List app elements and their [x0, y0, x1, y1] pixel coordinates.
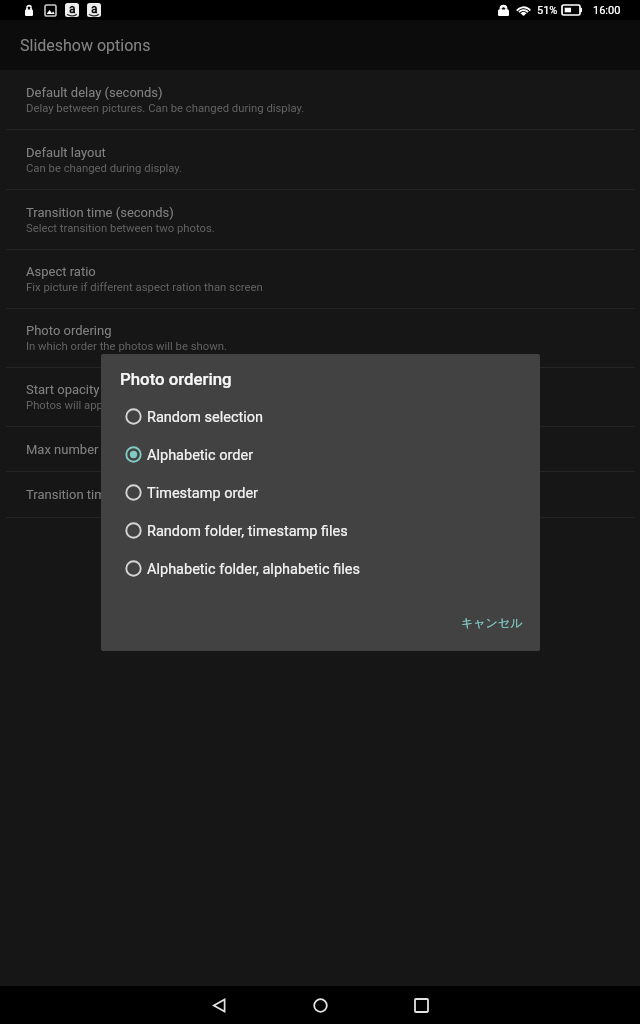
button[interactable]: Photo ordering: [0, 309, 640, 367]
button[interactable]: Aspect ratio: [0, 250, 640, 308]
staticText: Transition time (seconds): [26, 487, 174, 502]
button[interactable]: Back: [169, 986, 270, 1024]
staticText: Alphabetic folder, alphabetic files: [147, 561, 360, 578]
button[interactable]: Alphabetic order: [101, 436, 540, 474]
button[interactable]: Transition time (seconds): [0, 472, 640, 517]
button[interactable]: Recent apps: [371, 986, 472, 1024]
button[interactable]: Home: [270, 986, 371, 1024]
button[interactable]: キャンセル: [452, 611, 532, 634]
staticText: Select transition between two photos.: [26, 222, 215, 235]
staticText: Fix picture if different aspect ration t…: [26, 281, 263, 294]
staticText: a: [91, 3, 98, 16]
button[interactable]: Default layout: [0, 130, 640, 189]
staticText: Default delay (seconds): [26, 85, 163, 100]
staticText: In which order the photos will be shown.: [26, 340, 227, 353]
staticText: Photo ordering: [26, 323, 112, 338]
staticText: Photo ordering: [120, 369, 232, 389]
button[interactable]: Max number of photos: [0, 427, 640, 471]
button[interactable]: Random selection: [101, 398, 540, 436]
button[interactable]: Alphabetic folder, alphabetic files: [101, 550, 540, 588]
staticText: キャンセル: [461, 615, 523, 630]
staticText: Max number of photos: [26, 442, 157, 457]
button[interactable]: Random folder, timestamp files: [101, 512, 540, 550]
staticText: Random folder, timestamp files: [147, 523, 348, 540]
staticText: Aspect ratio: [26, 264, 96, 279]
staticText: a: [69, 3, 76, 16]
staticText: 51%: [537, 4, 558, 17]
button[interactable]: Transition time (seconds): [0, 190, 640, 249]
staticText: Can be changed during display.: [26, 162, 183, 175]
button[interactable]: Timestamp order: [101, 474, 540, 512]
staticText: Photos will appear progressively: [26, 399, 189, 412]
button[interactable]: Start opacity: [0, 368, 640, 426]
staticText: Slideshow options: [20, 36, 151, 55]
button[interactable]: Default delay (seconds): [0, 70, 640, 129]
staticText: Delay between pictures. Can be changed d…: [26, 102, 305, 115]
staticText: 16:00: [593, 4, 621, 17]
staticText: Transition time (seconds): [26, 205, 174, 220]
staticText: Default layout: [26, 145, 106, 160]
staticText: Random selection: [147, 409, 264, 426]
staticText: Alphabetic order: [147, 447, 254, 464]
staticText: Timestamp order: [147, 485, 258, 502]
staticText: Start opacity: [26, 382, 100, 397]
